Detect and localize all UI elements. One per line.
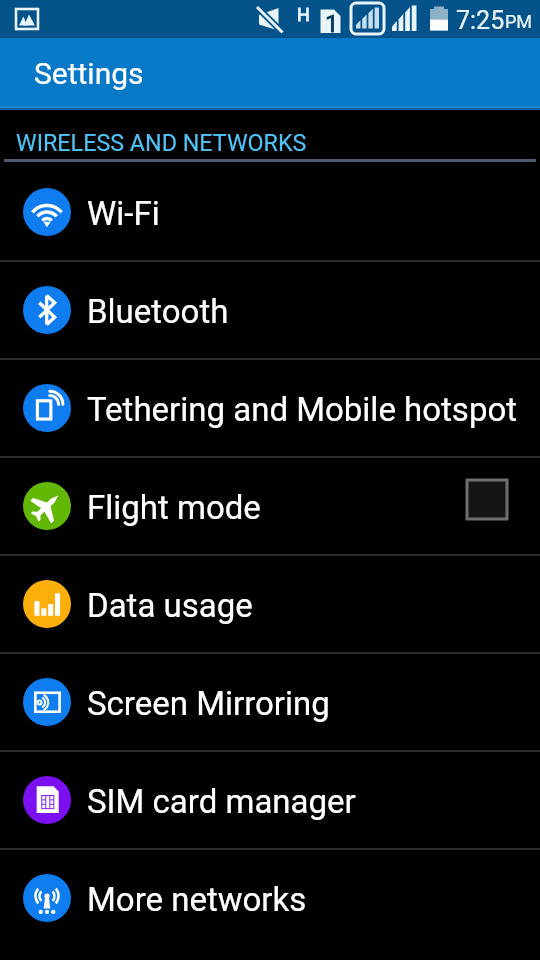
button[interactable]: Wi-Fi — [0, 163, 540, 260]
staticText: 7:25 — [456, 6, 505, 35]
button[interactable]: Bluetooth — [0, 261, 540, 358]
staticText: H — [297, 4, 310, 25]
button[interactable]: Flight mode — [0, 457, 540, 554]
button[interactable]: Data usage — [0, 555, 540, 652]
staticText: 1 — [325, 10, 339, 38]
staticText: Flight mode — [87, 488, 261, 527]
staticText: WIRELESS AND NETWORKS — [16, 129, 307, 156]
staticText: PM — [505, 11, 533, 32]
staticText: Wi-Fi — [87, 194, 160, 233]
button[interactable]: SIM card manager — [0, 751, 540, 848]
button[interactable]: Settings — [0, 38, 540, 110]
staticText: Data usage — [87, 586, 253, 625]
staticText: Screen Mirroring — [87, 684, 330, 723]
button[interactable]: Tethering and Mobile hotspot — [0, 359, 540, 456]
button[interactable]: Flight mode toggle — [467, 480, 507, 519]
staticText: More networks — [87, 880, 307, 919]
staticText: Tethering and Mobile hotspot — [87, 390, 518, 429]
staticText: Settings — [34, 56, 144, 91]
button[interactable]: More networks — [0, 849, 540, 946]
staticText: SIM card manager — [87, 782, 356, 821]
staticText: Bluetooth — [87, 292, 229, 331]
button[interactable]: Screen Mirroring — [0, 653, 540, 750]
